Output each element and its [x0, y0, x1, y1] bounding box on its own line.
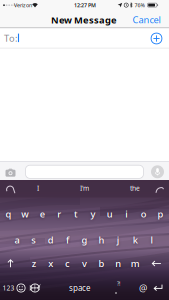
button[interactable]: w — [17, 203, 33, 225]
button[interactable]: p — [152, 203, 168, 225]
staticText: k — [133, 234, 138, 246]
staticText: ?! — [117, 280, 120, 287]
button[interactable]: x — [43, 252, 59, 274]
button[interactable]: Next Keyboard — [30, 283, 39, 292]
staticText: d — [48, 234, 54, 246]
button[interactable]: z — [26, 252, 42, 274]
button[interactable]: Return — [153, 284, 163, 292]
button[interactable]: o — [136, 203, 152, 225]
staticText: 12:27 PM — [74, 2, 96, 9]
button[interactable]: a — [9, 229, 25, 251]
staticText: space — [69, 283, 91, 293]
button[interactable]: i — [119, 203, 135, 225]
staticText: e — [40, 208, 45, 220]
button[interactable]: To — [0, 28, 146, 48]
button[interactable]: Emoji — [16, 283, 25, 292]
button[interactable]: e — [34, 203, 50, 225]
button[interactable]: the — [118, 180, 152, 196]
button[interactable]: c — [60, 252, 76, 274]
staticText: g — [81, 234, 87, 246]
staticText: u — [107, 208, 113, 220]
staticText: h — [98, 234, 104, 246]
button[interactable]: v — [76, 252, 92, 274]
staticText: c — [65, 257, 70, 270]
staticText: w — [21, 208, 29, 220]
staticText: q — [5, 208, 11, 220]
staticText: I — [37, 184, 39, 193]
button[interactable]: f — [60, 229, 76, 251]
staticText: j — [117, 234, 120, 246]
staticText: v — [82, 257, 87, 270]
staticText: p — [157, 208, 163, 220]
staticText: New Message — [51, 14, 117, 26]
button[interactable]: g — [76, 229, 92, 251]
button[interactable]: Camera — [4, 167, 17, 177]
button[interactable]: @ — [136, 280, 150, 296]
button[interactable]: s — [26, 229, 42, 251]
button[interactable]: b — [93, 252, 109, 274]
staticText: 123 — [2, 284, 14, 292]
button[interactable]: Record Audio — [150, 165, 164, 179]
button[interactable]: space — [60, 280, 100, 296]
button[interactable]: m — [127, 252, 143, 274]
button[interactable]: u — [102, 203, 118, 225]
staticText: @ — [139, 282, 147, 294]
staticText: s — [31, 234, 36, 246]
staticText: i — [125, 208, 128, 220]
staticText: To: — [4, 32, 18, 44]
staticText: m — [131, 257, 140, 270]
staticText: t — [74, 208, 78, 220]
staticText: I'm — [80, 184, 89, 193]
staticText: r — [57, 208, 61, 220]
button[interactable]: Swype — [5, 185, 16, 194]
button[interactable]: n — [110, 252, 126, 274]
staticText: f — [66, 234, 69, 246]
button[interactable]: I'm — [67, 180, 101, 196]
staticText: 76% — [134, 2, 144, 9]
button[interactable]: I — [23, 180, 53, 196]
button[interactable]: Message — [25, 165, 143, 178]
button[interactable]: Shift — [6, 259, 14, 268]
staticText: Cancel — [132, 13, 160, 26]
staticText: b — [98, 257, 104, 270]
staticText: n — [115, 257, 121, 270]
button[interactable]: Delete — [151, 260, 161, 267]
button[interactable]: d — [43, 229, 59, 251]
button[interactable]: y — [85, 203, 101, 225]
button[interactable]: r — [51, 203, 67, 225]
button[interactable]: Punctuation — [112, 280, 123, 295]
staticText: z — [32, 257, 36, 270]
button[interactable]: j — [110, 229, 126, 251]
button[interactable]: k — [127, 229, 143, 251]
staticText: l — [151, 234, 154, 246]
staticText: y — [90, 208, 95, 220]
button[interactable]: Cancel — [128, 11, 164, 28]
button[interactable]: Add Contact — [149, 31, 163, 45]
button[interactable]: l — [144, 229, 160, 251]
staticText: x — [48, 257, 53, 270]
staticText: o — [141, 208, 147, 220]
button[interactable]: t — [68, 203, 84, 225]
button[interactable]: h — [93, 229, 109, 251]
button[interactable]: q — [0, 203, 16, 225]
button[interactable]: 123 — [1, 280, 15, 296]
staticText: the — [130, 184, 140, 193]
staticText: Verizon — [14, 2, 32, 9]
staticText: a — [14, 234, 19, 246]
button[interactable]: Voice Input — [155, 185, 165, 194]
